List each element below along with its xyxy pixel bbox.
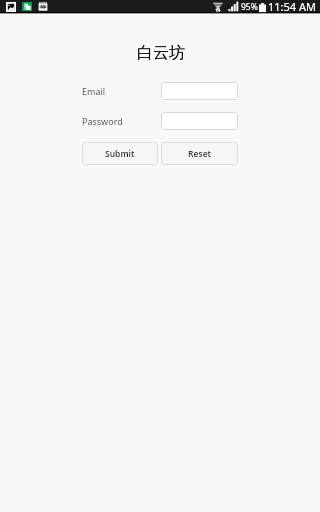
button[interactable]: Password input field <box>161 112 238 130</box>
staticText: 11:54 AM <box>268 0 316 13</box>
button[interactable]: Reset <box>161 142 238 165</box>
button[interactable]: Email input field <box>161 82 238 100</box>
staticText: 白云坊 <box>137 43 185 63</box>
staticText: Email <box>82 85 106 97</box>
staticText: 95% <box>241 1 258 13</box>
staticText: Password <box>82 115 123 127</box>
staticText: 白云坊 <box>137 43 185 63</box>
staticText: Reset <box>188 148 212 160</box>
staticText: Submit <box>105 148 135 160</box>
button[interactable]: Submit <box>82 142 158 165</box>
